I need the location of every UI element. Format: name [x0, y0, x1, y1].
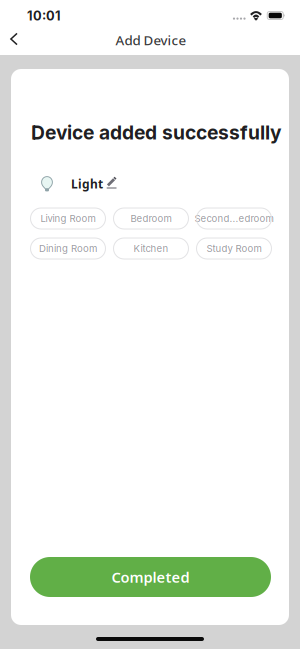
staticText: Study Room [206, 243, 261, 254]
staticText: Device added successfully [31, 121, 282, 144]
staticText: Kitchen [133, 243, 168, 254]
staticText: Second...edroom [194, 213, 273, 224]
staticText: Light [71, 176, 103, 192]
button[interactable]: Living Room [30, 208, 105, 229]
staticText: Add Device [115, 31, 186, 49]
staticText: Dining Room [39, 243, 97, 254]
staticText: 10:01 [27, 8, 61, 23]
button[interactable]: Study Room [196, 238, 271, 259]
button[interactable]: Dining Room [30, 238, 105, 259]
button[interactable]: Back [1, 26, 27, 52]
staticText: Bedroom [130, 213, 171, 224]
button[interactable]: Second...edroom [196, 208, 271, 229]
button[interactable]: Completed [30, 557, 271, 597]
staticText: Living Room [40, 213, 95, 224]
button[interactable]: Bedroom [113, 208, 188, 229]
staticText: Completed [111, 567, 189, 587]
button[interactable]: Kitchen [113, 238, 188, 259]
